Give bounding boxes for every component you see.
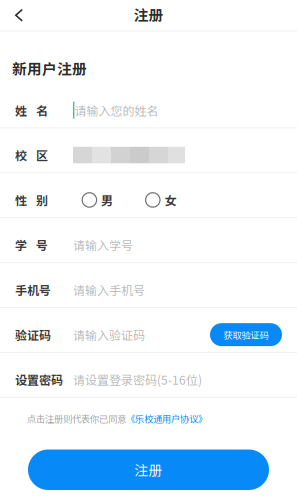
staticText: 姓 名 [15,101,48,119]
button[interactable]: 注册 [28,449,269,490]
staticText: 学 号 [15,236,48,254]
staticText: 设置密码 [15,371,63,388]
staticText: 新用户注册 [12,57,87,79]
staticText: 请输入手机号 [73,281,145,298]
staticText: 验证码 [15,326,51,343]
button[interactable]: 女 [146,191,176,209]
staticText: 女 [164,191,176,209]
button[interactable]: 男 [82,191,113,209]
staticText: 手机号 [15,281,51,298]
staticText: 男 [101,191,113,209]
staticText: 点击注册则代表你已同意 [27,412,126,425]
staticText: 注册 [134,460,162,480]
button[interactable]: Back [4,0,34,30]
staticText: 性 别 [15,191,48,209]
staticText: 《乐校通用户协议》 [126,412,207,425]
staticText: 请输入学号 [73,236,133,254]
staticText: 校 区 [15,146,48,164]
staticText: 请输入您的姓名 [74,101,158,119]
button[interactable]: 获取验证码 [210,323,282,346]
staticText: 请输入验证码 [73,326,145,343]
staticText: 注册 [133,4,163,25]
button[interactable]: 《乐校通用户协议》 [126,412,207,425]
staticText: 请设置登录密码(5-16位) [73,371,202,388]
staticText: 获取验证码 [223,328,268,341]
